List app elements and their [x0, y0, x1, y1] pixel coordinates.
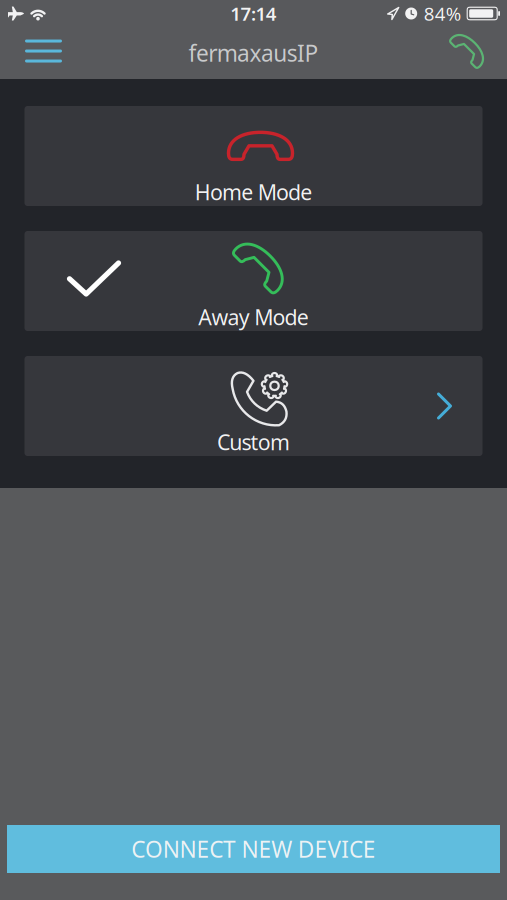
staticText: Home Mode	[195, 178, 312, 206]
staticText: CONNECT NEW DEVICE	[131, 834, 376, 864]
staticText: Away Mode	[198, 303, 309, 331]
staticText: Custom	[217, 428, 290, 456]
staticText: fermaxausIP	[188, 38, 318, 68]
button[interactable]: CONNECT NEW DEVICE	[7, 825, 500, 873]
staticText: 84%	[424, 1, 462, 26]
button[interactable]: Home Mode	[24, 106, 482, 206]
staticText: 17:14	[230, 1, 277, 26]
button[interactable]: Custom	[24, 356, 482, 456]
button[interactable]: Call	[449, 33, 489, 73]
button[interactable]: Menu	[21, 31, 66, 75]
button[interactable]: Away Mode	[24, 231, 482, 331]
